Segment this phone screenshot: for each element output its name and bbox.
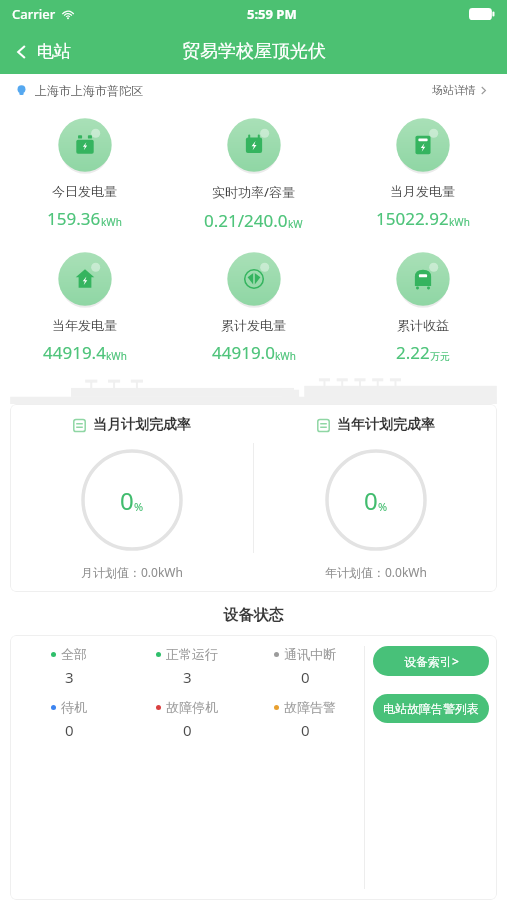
- staticText: 0: [65, 720, 74, 740]
- staticText: %: [378, 499, 388, 514]
- staticText: 当月计划完成率: [93, 416, 191, 434]
- staticText: 累计收益: [397, 317, 449, 333]
- button[interactable]: 当年发电量: [0, 240, 169, 372]
- button[interactable]: 累计收益: [338, 240, 507, 372]
- button[interactable]: 当月发电量: [338, 106, 507, 238]
- staticText: 44919.4: [43, 341, 106, 364]
- staticText: kW: [288, 217, 303, 231]
- staticText: 今日发电量: [52, 183, 117, 199]
- staticText: 159.36: [47, 207, 101, 230]
- button[interactable]: 故障停机: [128, 699, 246, 740]
- staticText: kWh: [449, 215, 470, 229]
- staticText: 场站详情: [432, 83, 476, 97]
- staticText: 0: [120, 484, 134, 517]
- button[interactable]: 今日发电量: [0, 106, 169, 238]
- staticText: 电站: [37, 41, 71, 62]
- staticText: 15022.92: [376, 207, 449, 230]
- staticText: 当月发电量: [390, 183, 455, 199]
- staticText: 故障告警: [284, 699, 336, 715]
- button[interactable]: 通讯中断: [246, 646, 364, 687]
- staticText: 年计划值：0.0kWh: [325, 564, 427, 580]
- staticText: kWh: [275, 349, 296, 363]
- button[interactable]: 电站故障告警列表: [373, 694, 489, 723]
- staticText: Carrier: [12, 5, 56, 23]
- staticText: kWh: [106, 349, 127, 363]
- staticText: 正常运行: [166, 646, 218, 662]
- staticText: 当年计划完成率: [337, 416, 435, 434]
- staticText: 全部: [61, 646, 87, 662]
- staticText: 当年发电量: [52, 317, 117, 333]
- staticText: 0: [364, 484, 378, 517]
- button[interactable]: 累计发电量: [169, 240, 338, 372]
- staticText: 0.21/240.0: [204, 209, 288, 232]
- staticText: 5:59 PM: [247, 5, 297, 23]
- button[interactable]: 正常运行: [128, 646, 246, 687]
- staticText: 故障停机: [166, 699, 218, 715]
- button[interactable]: 实时功率/容量: [169, 106, 338, 240]
- staticText: 贸易学校屋顶光伏: [182, 40, 326, 63]
- button[interactable]: Back: [0, 35, 81, 68]
- staticText: 累计发电量: [221, 317, 286, 333]
- staticText: 万元: [430, 350, 450, 363]
- staticText: 电站故障告警列表: [383, 701, 479, 716]
- staticText: 0: [301, 720, 310, 740]
- staticText: 设备状态: [0, 606, 507, 625]
- staticText: 待机: [61, 699, 87, 715]
- staticText: 上海市上海市普陀区: [35, 83, 143, 98]
- staticText: 设备索引>: [404, 653, 459, 669]
- button[interactable]: 全部: [10, 646, 128, 687]
- staticText: %: [134, 499, 144, 514]
- button[interactable]: 设备索引>: [373, 646, 489, 676]
- staticText: 3: [183, 667, 192, 687]
- staticText: 月计划值：0.0kWh: [81, 564, 183, 580]
- staticText: 0: [183, 720, 192, 740]
- staticText: 44919.0: [212, 341, 275, 364]
- other: Back: [14, 44, 30, 60]
- button[interactable]: 故障告警: [246, 699, 364, 740]
- button[interactable]: 待机: [10, 699, 128, 740]
- staticText: 通讯中断: [284, 646, 336, 662]
- staticText: kWh: [101, 215, 122, 229]
- staticText: 3: [65, 667, 74, 687]
- staticText: 实时功率/容量: [212, 183, 296, 201]
- staticText: 0: [301, 667, 310, 687]
- button[interactable]: 场站详情: [428, 79, 491, 101]
- staticText: 2.22: [396, 341, 430, 364]
